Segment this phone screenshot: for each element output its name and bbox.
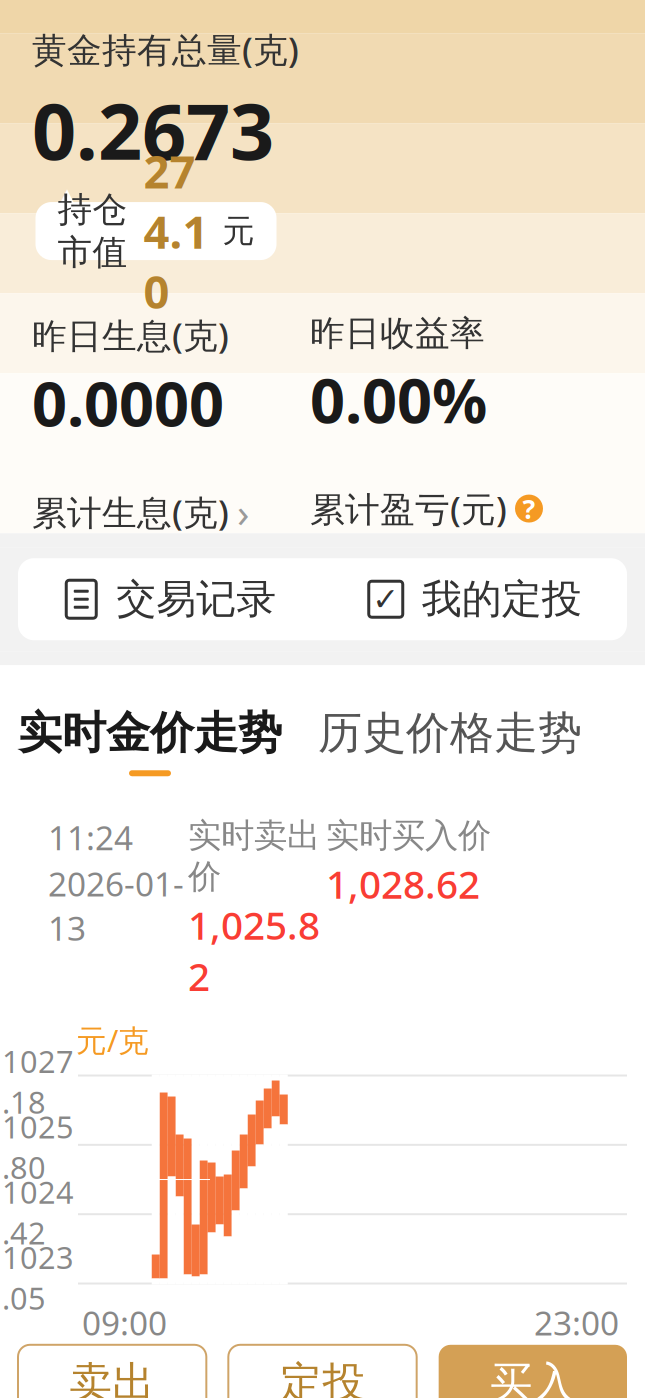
staticText: 昨日生息(克) xyxy=(32,312,229,358)
button[interactable]: 历史价格走势 xyxy=(300,691,600,791)
staticText: 实时买入价 xyxy=(326,815,491,856)
staticText: 实时卖出价 xyxy=(188,815,320,897)
staticText: 元/克 xyxy=(76,1020,149,1060)
staticText: 买入 xyxy=(490,1357,576,1398)
staticText: › xyxy=(237,485,249,539)
button[interactable]: 定投 xyxy=(228,1345,417,1398)
button[interactable]: 交易记录 xyxy=(18,558,322,640)
button[interactable]: 卖出 xyxy=(18,1345,206,1398)
staticText: 0.2673 xyxy=(32,78,274,181)
staticText: 实时金价走势 xyxy=(18,706,282,760)
staticText: 累计盈亏(元) xyxy=(310,485,507,531)
staticText: 我的定投 xyxy=(422,575,582,624)
staticText: 黄金持有总量(克) xyxy=(32,26,299,72)
staticText: 23:00 xyxy=(534,1300,619,1345)
staticText: 交易记录 xyxy=(116,575,276,624)
staticText: ✓ xyxy=(372,581,399,617)
staticText: 持仓市值 xyxy=(57,188,127,274)
staticText: 1,028.62 xyxy=(326,858,480,909)
staticText: 1025.80 xyxy=(2,1106,74,1187)
staticText: 274.10 xyxy=(143,141,208,321)
staticText: 1027.18 xyxy=(2,1041,74,1122)
button[interactable]: 买入 xyxy=(439,1345,627,1398)
staticText: +274.10 xyxy=(310,536,537,617)
staticText: 0.0000 xyxy=(32,543,224,624)
staticText: ▲ xyxy=(58,183,76,210)
staticText: ? xyxy=(522,491,535,526)
staticText: 11:24 xyxy=(48,815,133,859)
staticText: 1023.05 xyxy=(2,1237,74,1318)
staticText: 卖出 xyxy=(69,1357,155,1398)
staticText: 2026-01-13 xyxy=(48,861,184,950)
button[interactable]: 实时金价走势 xyxy=(0,691,300,791)
staticText: 定投 xyxy=(279,1357,365,1398)
staticText: 累计生息(克) xyxy=(32,489,229,535)
staticText: 09:00 xyxy=(82,1300,167,1345)
staticText: 历史价格走势 xyxy=(318,706,582,760)
staticText: 1024.42 xyxy=(2,1171,74,1253)
staticText: 元 xyxy=(222,211,254,251)
staticText: 昨日收益率 xyxy=(310,312,485,355)
button[interactable]: ✓ xyxy=(322,558,627,640)
staticText: 0.00% xyxy=(310,359,487,440)
staticText: 0.0000 xyxy=(32,362,224,443)
staticText: 1,025.82 xyxy=(188,899,320,1002)
